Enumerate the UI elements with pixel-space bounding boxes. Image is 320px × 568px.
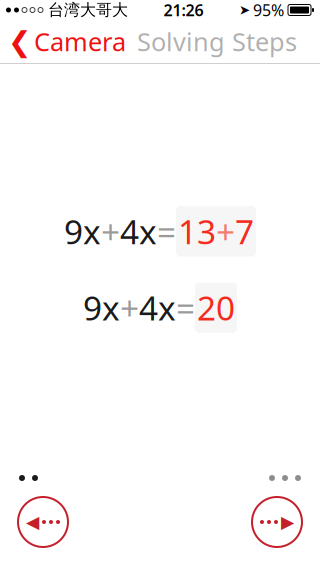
- staticText: ❮: [8, 26, 31, 57]
- staticText: 4: [120, 209, 139, 253]
- staticText: 20: [197, 285, 235, 330]
- staticText: 台湾大哥大: [48, 0, 128, 20]
- staticText: 9: [83, 285, 102, 330]
- staticText: +: [216, 209, 235, 253]
- staticText: 4: [139, 285, 158, 330]
- button[interactable]: Next step: [252, 497, 302, 547]
- staticText: Camera: [34, 25, 126, 58]
- staticText: 95%: [253, 0, 284, 21]
- staticText: ▶: [281, 512, 294, 532]
- button[interactable]: Previous step: [18, 497, 68, 547]
- staticText: =: [176, 285, 195, 330]
- staticText: x: [139, 209, 157, 253]
- staticText: 21:26: [163, 0, 203, 21]
- staticText: ◀: [26, 512, 39, 532]
- staticText: Solving Steps: [137, 25, 297, 58]
- staticText: x: [83, 209, 101, 253]
- staticText: +: [120, 285, 139, 330]
- staticText: 7: [235, 209, 254, 253]
- staticText: +: [101, 209, 120, 253]
- staticText: x: [102, 285, 120, 330]
- staticText: 9: [64, 209, 83, 253]
- staticText: 13: [178, 209, 216, 253]
- staticText: =: [157, 209, 176, 253]
- button[interactable]: ❮: [0, 18, 126, 65]
- staticText: x: [158, 285, 176, 330]
- staticText: ➤: [239, 2, 250, 17]
